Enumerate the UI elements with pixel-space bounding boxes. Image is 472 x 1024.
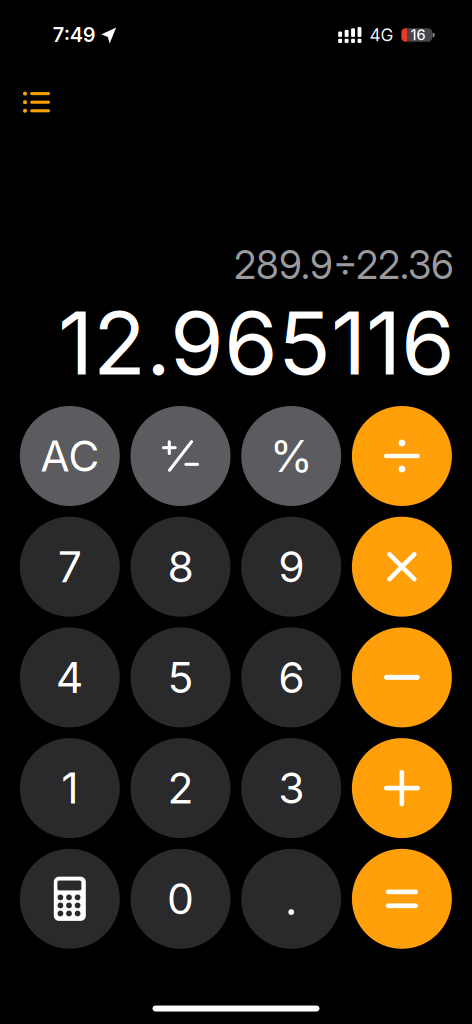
staticText: 3: [278, 763, 304, 813]
button[interactable]: History: [13, 79, 59, 125]
staticText: 9: [278, 541, 304, 592]
staticText: 7:49: [53, 23, 96, 46]
staticText: 7: [58, 541, 82, 592]
button[interactable]: Multiply: [352, 517, 452, 617]
button[interactable]: 1: [20, 738, 120, 838]
button[interactable]: 0: [130, 849, 230, 949]
button[interactable]: Equals: [352, 849, 452, 949]
button[interactable]: 5: [130, 627, 230, 727]
staticText: 16: [410, 26, 425, 44]
staticText: 8: [167, 541, 193, 592]
button[interactable]: Calculator: [20, 849, 120, 949]
staticText: 5: [167, 652, 193, 702]
button[interactable]: Plus: [352, 738, 452, 838]
staticText: 289.9÷22.36: [234, 242, 454, 288]
staticText: %: [270, 430, 313, 482]
button[interactable]: %: [241, 406, 341, 506]
button[interactable]: Plus Minus: [130, 406, 230, 506]
staticText: 4: [56, 652, 84, 702]
button[interactable]: Decimal point: [241, 849, 341, 949]
button[interactable]: 7: [20, 517, 120, 617]
button[interactable]: Divide: [352, 406, 452, 506]
staticText: 0: [167, 874, 194, 924]
staticText: 4G: [369, 25, 393, 45]
button[interactable]: AC: [20, 406, 120, 506]
button[interactable]: Minus: [352, 627, 452, 727]
staticText: 12.965116: [58, 292, 455, 394]
button[interactable]: 2: [130, 738, 230, 838]
button[interactable]: 9: [241, 517, 341, 617]
button[interactable]: 8: [130, 517, 230, 617]
staticText: 6: [278, 652, 304, 702]
staticText: AC: [40, 431, 99, 481]
staticText: 1: [61, 763, 78, 813]
button[interactable]: 3: [241, 738, 341, 838]
button[interactable]: 4: [20, 627, 120, 727]
staticText: 2: [167, 763, 193, 813]
button[interactable]: 6: [241, 627, 341, 727]
